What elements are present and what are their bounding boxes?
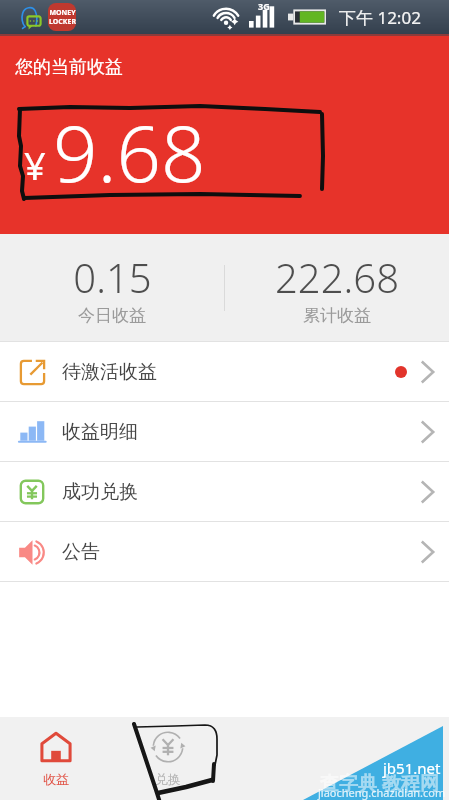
button[interactable]: 公告 <box>0 522 449 581</box>
button[interactable]: 收益明细 <box>0 402 449 461</box>
staticText: 下午 12:02 <box>339 6 421 29</box>
staticText: jiaocheng.chazidian.com <box>318 785 446 800</box>
staticText: jb51.net <box>383 758 441 778</box>
staticText: 9.68 <box>53 99 206 205</box>
button[interactable]: 成功兑换 <box>0 462 449 521</box>
staticText: 222.68 <box>275 250 399 304</box>
button[interactable]: 待激活收益 <box>0 342 449 401</box>
staticText: 待激活收益 <box>62 360 157 384</box>
staticText: 0.15 <box>73 250 152 304</box>
button[interactable]: 收益 <box>0 717 112 800</box>
staticText: ¥ <box>24 139 46 191</box>
staticText: 收益明细 <box>62 420 138 444</box>
staticText: 收益 <box>43 771 69 787</box>
button[interactable]: 兑换 <box>112 717 224 800</box>
staticText: 公告 <box>62 540 100 564</box>
staticText: 累计收益 <box>303 305 371 326</box>
staticText: 兑换 <box>155 771 181 787</box>
staticText: 查字典 教程网 <box>320 770 439 796</box>
staticText: MONEY LOCKER <box>49 8 76 26</box>
staticText: 您的当前收益 <box>15 56 123 79</box>
staticText: 3G <box>258 0 270 12</box>
staticText: 今日收益 <box>78 305 146 326</box>
staticText: 成功兑换 <box>62 480 138 504</box>
